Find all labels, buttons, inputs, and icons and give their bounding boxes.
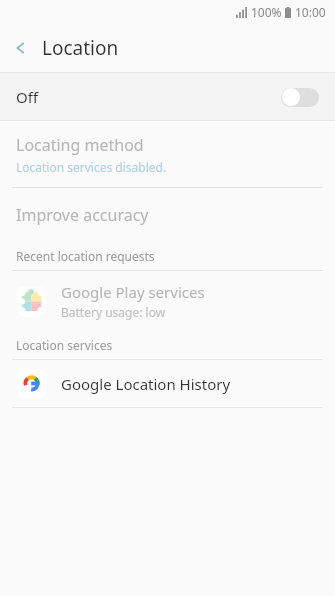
staticText: Google Location History [61,374,231,394]
staticText: Location services [16,337,113,353]
staticText: Location [42,35,119,61]
staticText: 100% [251,4,282,20]
button[interactable]: Google Play services [0,271,335,331]
button[interactable]: Off [0,73,335,120]
staticText: Recent location requests [16,248,155,264]
staticText: Improve accuracy [16,204,149,226]
staticText: Google Play services [61,282,205,302]
button[interactable]: Google Location History [0,360,335,407]
staticText: 10:00 [295,4,326,20]
staticText: Off [16,87,39,107]
button[interactable]: Navigate up [0,27,42,69]
button[interactable]: Locating method [0,121,335,187]
button[interactable]: Improve accuracy [0,188,335,242]
staticText: Location services disabled. [16,159,167,175]
staticText: Battery usage: low [61,304,166,320]
staticText: Locating method [16,134,144,156]
